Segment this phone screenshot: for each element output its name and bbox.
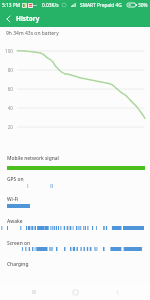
staticText: Wi-Fi: [7, 196, 19, 203]
staticText: Awake: [7, 218, 23, 225]
staticText: 80: [0, 67, 13, 73]
staticText: SMART Prepaid 4G: [80, 2, 122, 9]
staticText: 5:13 PM: [2, 2, 21, 9]
staticText: 9h 34m 43s on battery: [6, 30, 59, 37]
button[interactable]: Back: [0, 10, 17, 27]
staticText: Mobile network signal: [7, 155, 59, 162]
button[interactable]: Home: [67, 284, 83, 300]
staticText: 20: [0, 124, 13, 130]
staticText: GPS on: [7, 176, 24, 183]
staticText: History: [16, 14, 40, 23]
staticText: 40: [0, 105, 13, 111]
staticText: 30%: [138, 2, 148, 9]
staticText: 0.03K/s: [42, 2, 59, 9]
staticText: 100: [0, 48, 13, 54]
staticText: Charging: [7, 261, 29, 268]
staticText: ...: [33, 1, 37, 8]
staticText: Screen on: [7, 240, 31, 247]
staticText: 60: [0, 86, 13, 92]
button[interactable]: Recents: [26, 284, 42, 300]
